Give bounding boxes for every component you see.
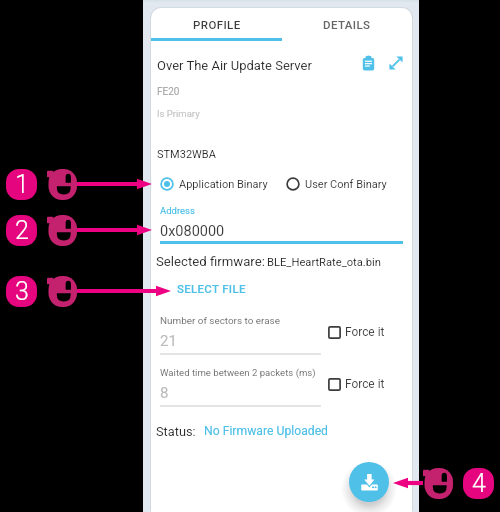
staticText: Number of sectors to erase (160, 315, 280, 327)
staticText: DETAILS (323, 18, 371, 31)
staticText: 8 (160, 384, 169, 402)
staticText: Over The Air Update Server (157, 58, 312, 73)
staticText: PROFILE (193, 18, 241, 31)
button[interactable]: DETAILS (282, 8, 412, 41)
staticText: Is Primary (157, 108, 200, 119)
staticText: Status: (156, 424, 196, 439)
staticText: BLE_HeartRate_ota.bin (267, 256, 382, 269)
staticText: 21 (160, 332, 177, 350)
button[interactable]: Application Binary (160, 174, 268, 194)
staticText: 0x080000 (160, 223, 225, 240)
button[interactable]: PROFILE (151, 8, 282, 41)
staticText: 1 (15, 170, 29, 199)
staticText: 4 (472, 469, 486, 498)
staticText: STM32WBA (157, 148, 216, 161)
staticText: 2 (15, 216, 29, 245)
staticText: Force it (345, 325, 385, 339)
staticText: User Conf Binary (305, 178, 387, 191)
staticText: Address (160, 205, 195, 216)
staticText: SELECT FILE (177, 282, 246, 295)
staticText: FE20 (157, 86, 180, 98)
staticText: Selected firmware: (156, 254, 265, 269)
button[interactable]: Download firmware (349, 462, 389, 502)
button[interactable]: Expand (384, 51, 408, 75)
staticText: Application Binary (179, 178, 268, 191)
staticText: Force it (345, 377, 385, 391)
button[interactable]: SELECT FILE (177, 282, 246, 298)
button[interactable]: User Conf Binary (286, 174, 387, 194)
button[interactable]: Copy to clipboard (356, 51, 380, 75)
staticText: 3 (15, 277, 29, 306)
staticText: No Firmware Uploaded (204, 424, 328, 438)
button[interactable]: Force it (328, 375, 385, 393)
staticText: Waited time between 2 packets (ms) (160, 367, 316, 378)
button[interactable]: Force it (328, 323, 385, 341)
